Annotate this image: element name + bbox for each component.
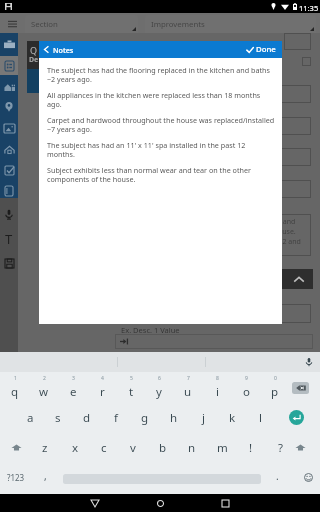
staticText: k bbox=[229, 410, 236, 426]
button[interactable]: s bbox=[44, 403, 72, 432]
button[interactable]: Text bbox=[0, 228, 18, 250]
staticText: ? bbox=[278, 440, 283, 456]
button[interactable]: Home bbox=[0, 76, 18, 96]
staticText: ! bbox=[249, 440, 253, 456]
button[interactable]: Enter bbox=[289, 410, 304, 425]
button[interactable]: c bbox=[90, 433, 118, 462]
staticText: Ex. Desc. 1 Value bbox=[121, 325, 180, 335]
staticText: 8 bbox=[216, 375, 219, 382]
button[interactable]: Checklist bbox=[0, 160, 18, 180]
button[interactable]: f bbox=[102, 403, 130, 432]
button[interactable]: 0 bbox=[261, 374, 289, 403]
button[interactable]: Home bbox=[149, 494, 171, 512]
button[interactable]: 5 bbox=[117, 374, 145, 403]
button[interactable]: ?123 bbox=[2, 464, 30, 490]
staticText: j bbox=[202, 410, 205, 426]
staticText: f bbox=[114, 410, 118, 426]
staticText: 11:35 bbox=[299, 3, 319, 13]
staticText: Q bbox=[30, 44, 38, 56]
button[interactable]: 9 bbox=[232, 374, 260, 403]
staticText: l bbox=[259, 410, 262, 426]
staticText: The subject has had the flooring replace… bbox=[47, 65, 275, 84]
button[interactable]: x bbox=[61, 433, 89, 462]
staticText: . bbox=[276, 469, 279, 483]
staticText: Notes bbox=[53, 45, 74, 55]
button[interactable]: Improvements bbox=[145, 15, 316, 33]
staticText: 7 bbox=[187, 375, 190, 382]
button[interactable]: Shift bbox=[295, 433, 319, 462]
button[interactable]: Notes bbox=[0, 181, 18, 201]
button[interactable]: ! bbox=[237, 433, 265, 462]
button[interactable]: Photos bbox=[0, 118, 18, 138]
button[interactable]: . bbox=[268, 464, 286, 490]
staticText: e bbox=[70, 384, 77, 400]
button[interactable]: 8 bbox=[203, 374, 231, 403]
button[interactable]: 2 bbox=[30, 374, 58, 403]
button[interactable]: Voice bbox=[0, 203, 18, 225]
button[interactable]: n bbox=[178, 433, 206, 462]
staticText: Carpet and hardwood throughout the house… bbox=[47, 115, 275, 134]
staticText: , bbox=[44, 469, 47, 483]
button[interactable]: Section bbox=[25, 15, 138, 33]
button[interactable]: Projects bbox=[0, 33, 18, 56]
button[interactable]: 1 bbox=[1, 374, 29, 403]
staticText: 4 bbox=[101, 375, 104, 382]
button[interactable]: k bbox=[218, 403, 246, 432]
button[interactable]: b bbox=[149, 433, 177, 462]
staticText: ?123 bbox=[7, 472, 25, 483]
staticText: n bbox=[188, 440, 196, 456]
button[interactable]: Collapse bbox=[276, 269, 313, 289]
staticText: Subject exhibits less than normal wear a… bbox=[47, 165, 275, 184]
button[interactable]: 3 bbox=[59, 374, 87, 403]
button[interactable]: g bbox=[131, 403, 159, 432]
staticText: Improvements bbox=[151, 19, 205, 30]
staticText: 5 bbox=[130, 375, 133, 382]
staticText: q bbox=[11, 384, 19, 400]
button[interactable]: 7 bbox=[174, 374, 202, 403]
button[interactable]: Menu bbox=[0, 13, 24, 33]
staticText: z bbox=[42, 440, 48, 456]
staticText: i bbox=[216, 384, 219, 400]
button[interactable]: Save bbox=[0, 252, 18, 274]
button[interactable]: 6 bbox=[145, 374, 173, 403]
staticText: 2 bbox=[43, 375, 46, 382]
staticText: c bbox=[101, 440, 107, 456]
staticText: p bbox=[271, 384, 279, 400]
staticText: g bbox=[141, 410, 149, 426]
staticText: ouse. bbox=[278, 227, 296, 237]
button[interactable]: Backspace bbox=[292, 382, 309, 394]
button[interactable]: d bbox=[73, 403, 101, 432]
button[interactable]: h bbox=[160, 403, 188, 432]
staticText: 0 bbox=[274, 375, 277, 382]
staticText: y bbox=[156, 384, 162, 400]
staticText: C2 and bbox=[278, 237, 301, 247]
button[interactable]: , bbox=[36, 464, 54, 490]
button[interactable]: Shift bbox=[4, 433, 28, 462]
button[interactable]: 4 bbox=[88, 374, 116, 403]
button[interactable]: Sketch bbox=[0, 139, 18, 159]
button[interactable]: Voice input bbox=[300, 352, 317, 372]
button[interactable]: l bbox=[246, 403, 274, 432]
button[interactable]: a bbox=[16, 403, 44, 432]
staticText: m bbox=[217, 440, 228, 456]
staticText: w bbox=[39, 384, 49, 400]
button[interactable]: Notes bbox=[43, 41, 74, 58]
staticText: x bbox=[72, 440, 79, 456]
button[interactable]: ? bbox=[266, 433, 294, 462]
button[interactable]: Recent apps bbox=[214, 494, 236, 512]
button[interactable]: Sections bbox=[0, 56, 18, 75]
button[interactable]: j bbox=[189, 403, 217, 432]
button[interactable]: Emoji bbox=[298, 464, 318, 490]
staticText: De bbox=[29, 55, 39, 65]
staticText: s bbox=[55, 410, 61, 426]
staticText: 6 bbox=[158, 375, 161, 382]
button[interactable]: m bbox=[208, 433, 236, 462]
button[interactable]: v bbox=[119, 433, 147, 462]
button[interactable]: Done bbox=[246, 41, 276, 58]
button[interactable]: z bbox=[31, 433, 59, 462]
button[interactable]: Map bbox=[0, 97, 18, 117]
staticText: T bbox=[5, 230, 13, 248]
staticText: t bbox=[129, 384, 134, 400]
button[interactable]: Back bbox=[84, 494, 106, 512]
